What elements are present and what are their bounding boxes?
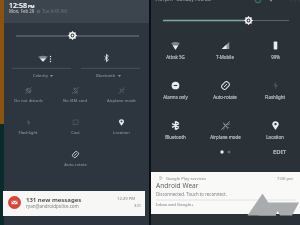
staticText: 7:00 pm xyxy=(277,176,293,182)
staticText: 131 new messages xyxy=(26,196,82,204)
staticText: Bluetooth xyxy=(165,134,186,140)
staticText: T-Mobile xyxy=(216,54,234,60)
button[interactable]: Auto-rotate xyxy=(52,151,98,175)
staticText: Airplane mode xyxy=(107,98,136,104)
staticText: Flashlight xyxy=(265,94,285,100)
button[interactable]: EDIT xyxy=(273,148,287,156)
staticText: Tue 8:45 AM xyxy=(42,8,68,14)
staticText: 99% xyxy=(271,54,280,60)
staticText: EDIT xyxy=(273,148,287,156)
button[interactable]: 131 new messages xyxy=(3,191,145,216)
button[interactable]: Location xyxy=(98,119,144,143)
button[interactable]: Alarms only xyxy=(151,81,199,103)
staticText: Alarms only xyxy=(163,94,188,100)
staticText: Bluetooth xyxy=(96,73,116,79)
button[interactable]: Google Play services xyxy=(151,172,300,214)
staticText: 12:29 PM xyxy=(117,196,136,202)
button[interactable]: Airplane mode xyxy=(201,121,249,143)
button[interactable]: Flashlight xyxy=(251,81,299,103)
staticText: Google Play services xyxy=(166,176,207,182)
staticText: 7:01pm · Sunday Feb 28 xyxy=(155,0,211,3)
button[interactable]: Location xyxy=(251,121,299,143)
button[interactable]: Do not disturb xyxy=(5,87,51,111)
staticText: Location xyxy=(266,134,284,140)
button[interactable]: Cast xyxy=(52,119,98,143)
button[interactable]: T-Mobile xyxy=(201,41,249,63)
staticText: Cast xyxy=(71,130,80,136)
button[interactable]: Airplane mode xyxy=(98,87,144,111)
staticText: 331 xyxy=(134,203,142,209)
staticText: Disconnected. Touch to reconnect. xyxy=(156,191,227,197)
button[interactable]: No SIM card xyxy=(52,87,98,111)
button[interactable]: 99% xyxy=(251,41,299,63)
button[interactable]: Bluetooth xyxy=(151,121,199,143)
staticText: Airplane mode xyxy=(210,134,241,140)
staticText: Location xyxy=(113,130,130,136)
staticText: Auto-rotate xyxy=(213,94,237,100)
staticText: PM xyxy=(28,4,35,10)
button[interactable]: Flashlight xyxy=(5,119,51,143)
staticText: No SIM card xyxy=(63,98,87,104)
staticText: Do not disturb xyxy=(14,98,43,104)
staticText: Celerity xyxy=(33,73,48,79)
staticText: Mon, Feb 29 xyxy=(9,8,35,14)
button[interactable]: Auto-rotate xyxy=(201,81,249,103)
staticText: Atbsk 5G xyxy=(166,54,185,60)
staticText: ryan@androidpolice.com xyxy=(26,203,79,209)
staticText: Inbox and Google+ xyxy=(156,202,194,208)
staticText: Flashlight xyxy=(18,130,38,136)
staticText: 12:58 xyxy=(9,1,27,11)
button[interactable]: Atbsk 5G xyxy=(151,41,199,63)
staticText: Auto-rotate xyxy=(64,162,87,168)
staticText: Android Wear xyxy=(156,181,199,190)
